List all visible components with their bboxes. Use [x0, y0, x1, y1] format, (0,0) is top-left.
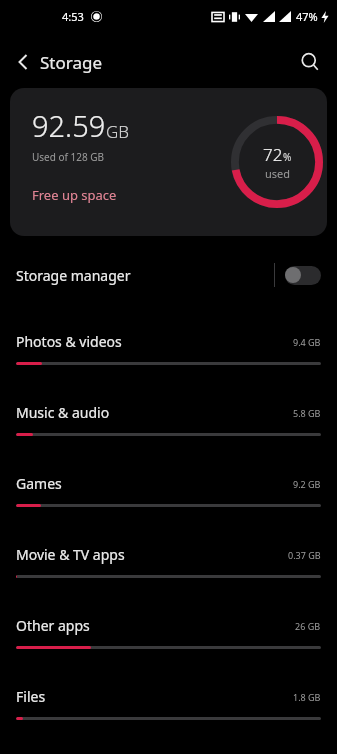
button[interactable]: 92.59: [10, 88, 327, 236]
button[interactable]: Back: [6, 44, 42, 80]
button[interactable]: Free up space: [32, 186, 117, 204]
button[interactable]: Music & audio: [0, 381, 337, 452]
button[interactable]: Other apps: [0, 594, 337, 665]
staticText: used: [265, 166, 291, 181]
button[interactable]: Photos & videos: [0, 310, 337, 381]
staticText: 0.37 GB: [288, 549, 321, 561]
staticText: Files: [16, 687, 46, 706]
staticText: 92.59: [32, 106, 106, 145]
button[interactable]: Storage manager: [0, 252, 337, 298]
button[interactable]: Games: [0, 452, 337, 523]
staticText: 9.2 GB: [293, 478, 321, 490]
staticText: Storage manager: [16, 266, 131, 285]
button[interactable]: Movie & TV apps: [0, 523, 337, 594]
staticText: Other apps: [16, 616, 90, 635]
button[interactable]: Storage manager toggle: [283, 259, 323, 291]
button[interactable]: Search: [291, 43, 329, 81]
staticText: 4:53: [62, 9, 84, 24]
staticText: GB: [106, 120, 130, 143]
staticText: 5.8 GB: [293, 407, 321, 419]
staticText: Photos & videos: [16, 332, 122, 351]
staticText: Movie & TV apps: [16, 545, 125, 564]
button[interactable]: Files: [0, 665, 337, 736]
staticText: 9.4 GB: [293, 336, 321, 348]
staticText: 72: [263, 143, 283, 166]
staticText: Free up space: [32, 186, 117, 204]
staticText: Storage: [40, 51, 103, 74]
staticText: %: [283, 150, 292, 164]
staticText: 26 GB: [295, 620, 321, 632]
staticText: Music & audio: [16, 403, 110, 422]
staticText: 47%: [296, 9, 318, 24]
staticText: Used of 128 GB: [32, 150, 105, 164]
staticText: Games: [16, 474, 62, 493]
staticText: 1.8 GB: [293, 691, 321, 703]
